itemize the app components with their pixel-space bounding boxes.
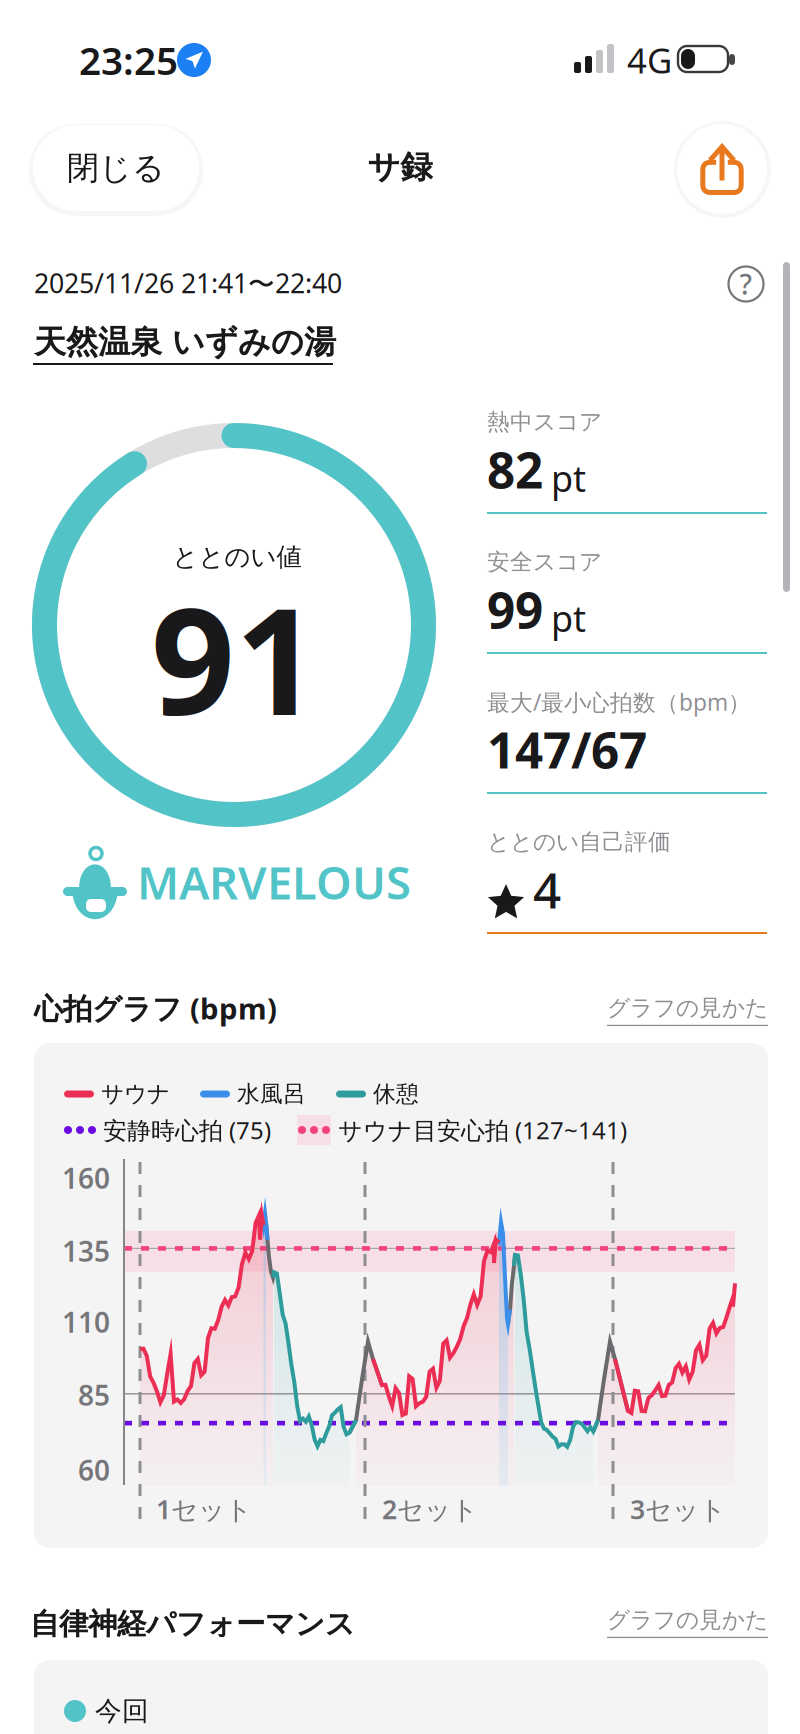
staticText: サウナ目安心拍 (127~141): [338, 1114, 627, 1146]
staticText: 85: [78, 1376, 110, 1414]
staticText: pt: [551, 594, 586, 642]
staticText: 4: [533, 856, 561, 922]
staticText: 安静時心拍 (75): [103, 1114, 271, 1146]
staticText: 2025/11/26 21:41〜22:40: [34, 265, 342, 301]
staticText: pt: [551, 454, 586, 502]
staticText: 1セット: [156, 1491, 252, 1527]
staticText: サ録: [367, 147, 432, 187]
staticText: 3セット: [630, 1491, 726, 1527]
staticText: グラフの見かた: [607, 994, 768, 1022]
staticText: MARVELOUS: [137, 852, 411, 912]
staticText: 安全スコア: [487, 548, 602, 576]
staticText: 休憩: [373, 1080, 419, 1108]
staticText: 160: [62, 1159, 110, 1197]
staticText: 天然温泉 いずみの湯: [34, 322, 336, 362]
staticText: 心拍グラフ (bpm): [34, 988, 277, 1027]
staticText: 今回: [95, 1695, 149, 1727]
button[interactable]: グラフの見かた: [607, 994, 768, 1026]
staticText: 99: [487, 576, 543, 642]
staticText: サウナ: [101, 1080, 170, 1108]
button[interactable]: Help: [723, 261, 769, 307]
staticText: 82: [487, 436, 543, 502]
button[interactable]: Share: [677, 124, 767, 214]
button[interactable]: 閉じる: [33, 125, 199, 211]
staticText: 91: [151, 561, 319, 755]
staticText: 閉じる: [67, 148, 165, 188]
staticText: 23:25: [79, 34, 178, 86]
button[interactable]: グラフの見かた: [607, 1606, 768, 1638]
staticText: ととのい値: [172, 541, 301, 572]
staticText: 熱中スコア: [487, 408, 602, 436]
staticText: 自律神経パフォーマンス: [30, 1606, 355, 1642]
staticText: 110: [62, 1303, 110, 1341]
staticText: グラフの見かた: [607, 1606, 768, 1634]
staticText: ととのい自己評価: [487, 828, 671, 856]
staticText: 4G: [627, 37, 672, 83]
staticText: ?: [739, 265, 752, 303]
staticText: 最大/最小心拍数（bpm）: [487, 687, 751, 717]
staticText: 2セット: [382, 1491, 478, 1527]
staticText: 水風呂: [237, 1080, 306, 1108]
staticText: 60: [78, 1451, 110, 1489]
staticText: 135: [62, 1232, 110, 1270]
staticText: 147/67: [487, 716, 647, 782]
